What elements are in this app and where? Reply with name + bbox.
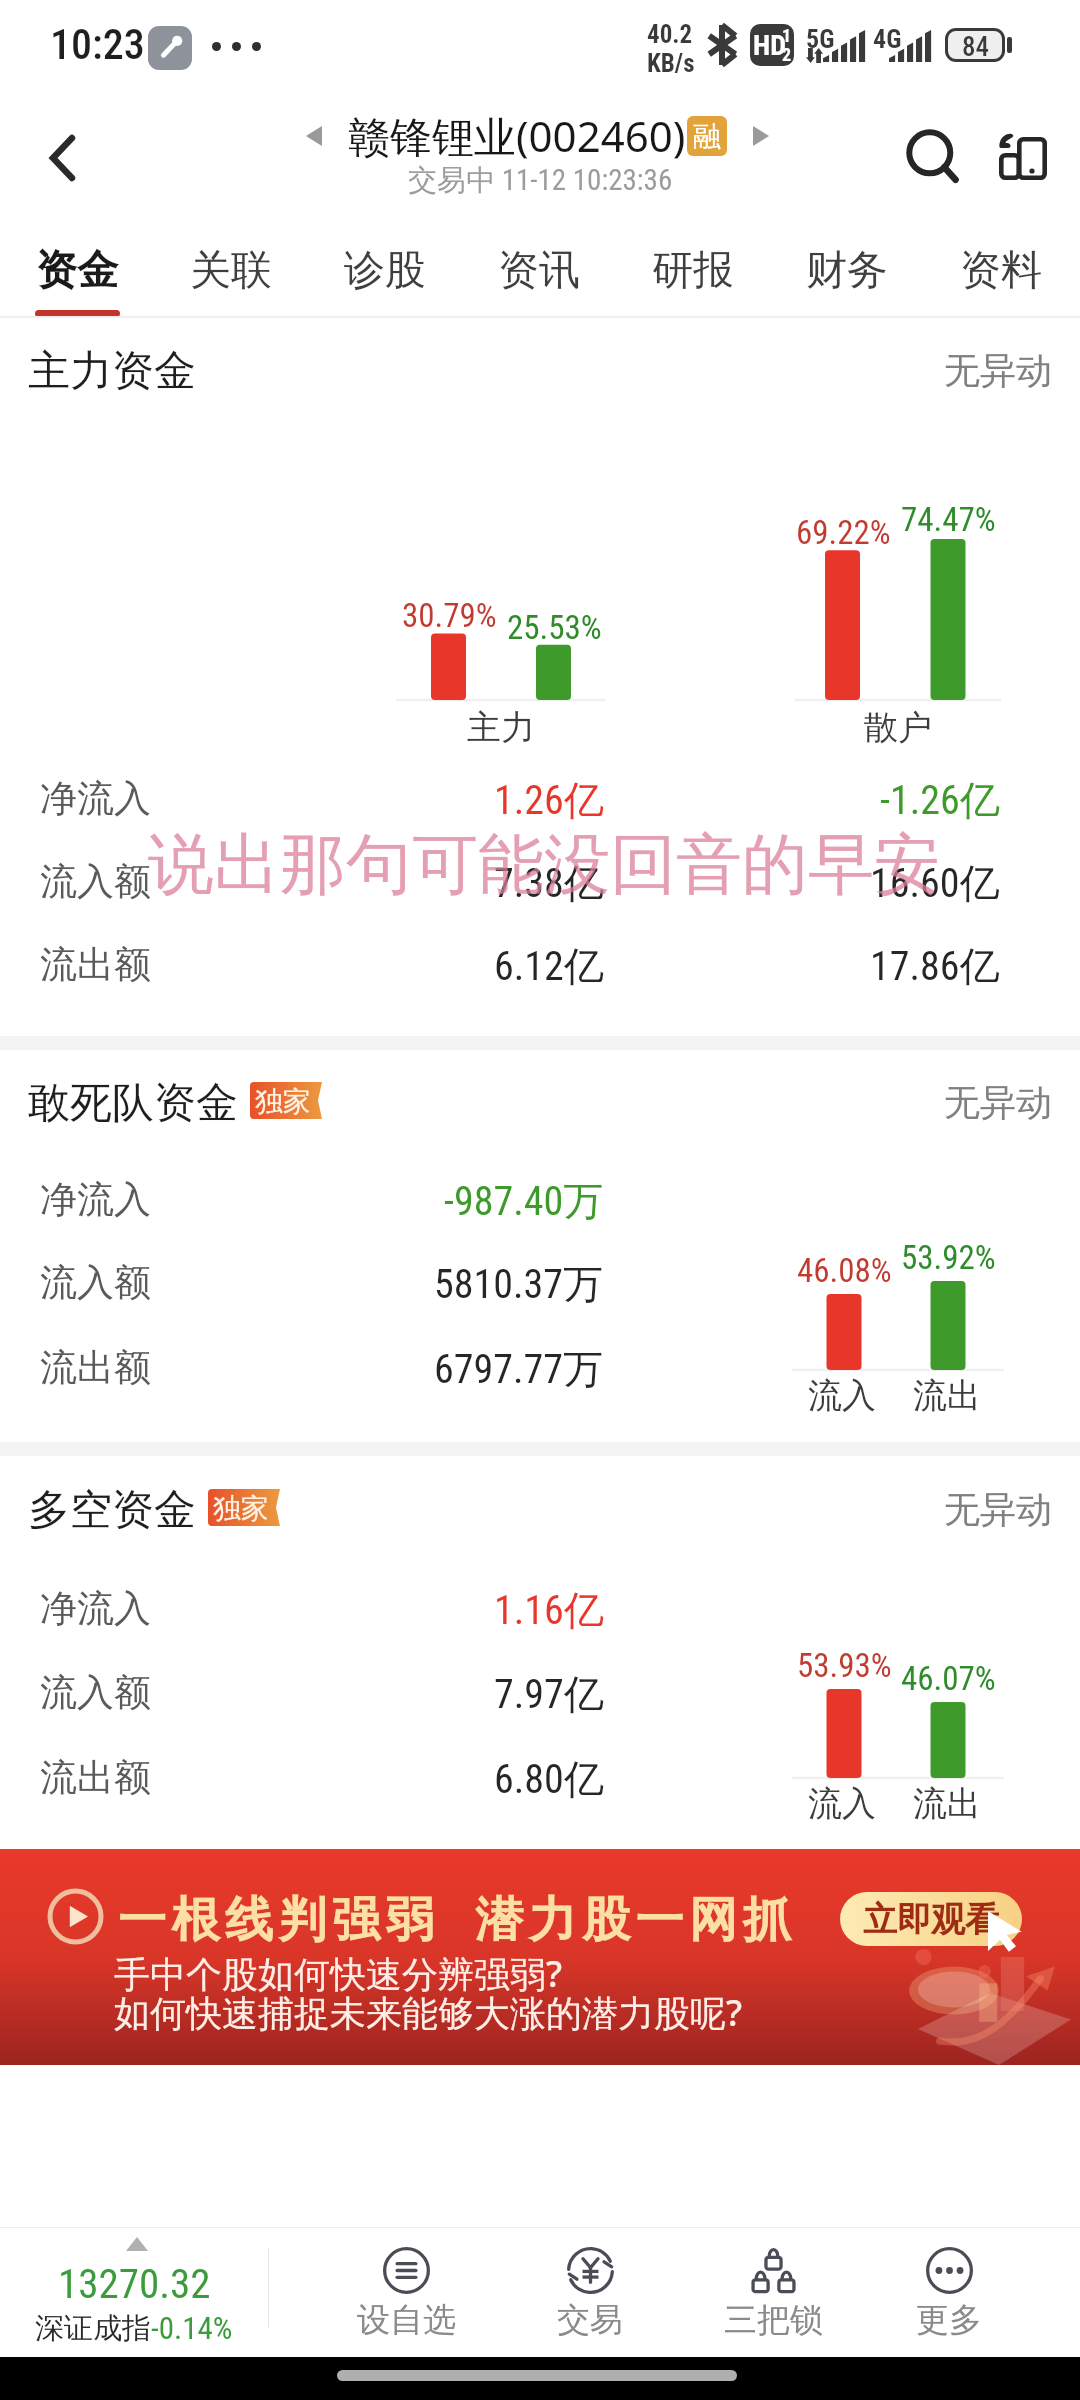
button[interactable]: 交易 [498,2228,682,2348]
button[interactable]: 设自选 [314,2228,498,2348]
staticText: 主力资金 [28,345,196,398]
staticText: 1.16亿 [494,1585,604,1635]
staticText: 25.53% [507,608,602,647]
button[interactable]: 财务 [777,220,917,315]
staticText: 17.86亿 [870,941,1000,991]
staticText: 说出那句可能没回音的早安 [148,823,940,906]
staticText: 资料 [960,245,1042,297]
staticText: 5810.37万 [434,1259,604,1309]
staticText: 74.47% [901,500,996,539]
staticText: 交易中 11-12 10:23:36 [408,162,673,199]
button[interactable]: 立即观看 [840,1892,1022,1946]
staticText: 流出额 [40,941,151,988]
staticText: 财务 [806,245,888,297]
staticText: 6.80亿 [494,1754,604,1804]
staticText: 主力 [467,706,535,749]
staticText: 多空资金 [28,1484,196,1537]
button[interactable]: Back [10,100,116,220]
button[interactable]: 更多 [857,2228,1041,2348]
staticText: -987.40万 [444,1176,604,1226]
staticText: 1 [782,25,792,46]
staticText: 10:23 [50,20,145,69]
staticText: 无异动 [944,348,1052,393]
button[interactable]: 资料 [931,220,1071,315]
staticText: 46.08% [797,1251,892,1290]
staticText: 无异动 [944,1487,1052,1532]
button[interactable]: 关联 [161,220,301,315]
staticText: 69.22% [796,513,891,552]
staticText: 16.60亿 [870,858,1000,908]
staticText: 独家 [213,1491,269,1526]
staticText: HD [753,29,787,62]
staticText: 资金 [36,245,118,297]
button[interactable]: 13270.32 [0,2228,268,2346]
staticText: -0.14% [151,2310,233,2346]
staticText: 流出额 [40,1344,151,1391]
staticText: 关联 [190,245,272,297]
staticText: 53.92% [901,1238,996,1277]
staticText: 84 [962,31,989,59]
staticText: 立即观看 [863,1898,999,1941]
staticText: 更多 [916,2299,982,2341]
staticText: 深证成指 [35,2310,151,2347]
staticText: 净流入 [40,1585,151,1632]
staticText: 一根线判强弱 潜力股一网抓 [118,1885,796,1951]
button[interactable]: 三把锁 [681,2228,865,2348]
staticText: 流入额 [40,1259,151,1306]
staticText: 13270.32 [58,2260,211,2308]
staticText: 4G [873,24,902,54]
staticText: 流入额 [40,858,151,905]
staticText: 净流入 [40,775,151,822]
staticText: 赣锋锂业(002460) [348,107,686,164]
staticText: 7.38亿 [494,858,604,908]
staticText: 流出额 [40,1754,151,1801]
staticText: 流出 [913,1374,981,1417]
button[interactable]: Search [878,100,984,220]
button[interactable]: 资讯 [469,220,609,315]
staticText: 53.93% [797,1646,892,1685]
staticText: 6.12亿 [494,941,604,991]
staticText: 7.97亿 [494,1669,604,1719]
staticText: 独家 [255,1084,311,1119]
staticText: 散户 [864,706,932,749]
staticText: 融 [693,119,721,154]
staticText: 诊股 [344,245,426,297]
staticText: 40.2 [647,20,693,49]
button[interactable]: 资金 [7,220,147,315]
staticText: 6797.77万 [434,1344,604,1394]
button[interactable]: Chart [968,100,1074,220]
staticText: 流入 [808,1782,876,1825]
staticText: 敢死队资金 [28,1077,238,1130]
button[interactable]: 诊股 [315,220,455,315]
staticText: 手中个股如何快速分辨强弱? [114,1949,563,1998]
staticText: 资讯 [498,245,580,297]
staticText: 5G [806,24,835,54]
staticText: 30.79% [402,596,497,635]
staticText: 三把锁 [724,2299,823,2341]
staticText: 净流入 [40,1176,151,1223]
staticText: 如何快速捕捉未来能够大涨的潜力股呢? [114,1988,743,2037]
staticText: 1.26亿 [494,775,604,825]
staticText: 流出 [913,1782,981,1825]
button[interactable]: 研报 [623,220,763,315]
staticText: 2 [782,44,792,65]
button[interactable]: 一根线判强弱 潜力股一网抓 [0,1849,1080,2065]
staticText: 无异动 [944,1080,1052,1125]
staticText: KB/s [647,49,695,78]
staticText: 交易 [557,2299,623,2341]
staticText: 流入 [808,1374,876,1417]
staticText: -1.26亿 [880,775,1000,825]
staticText: 流入额 [40,1669,151,1716]
staticText: 研报 [652,245,734,297]
staticText: 设自选 [357,2299,456,2341]
staticText: 46.07% [901,1659,996,1698]
